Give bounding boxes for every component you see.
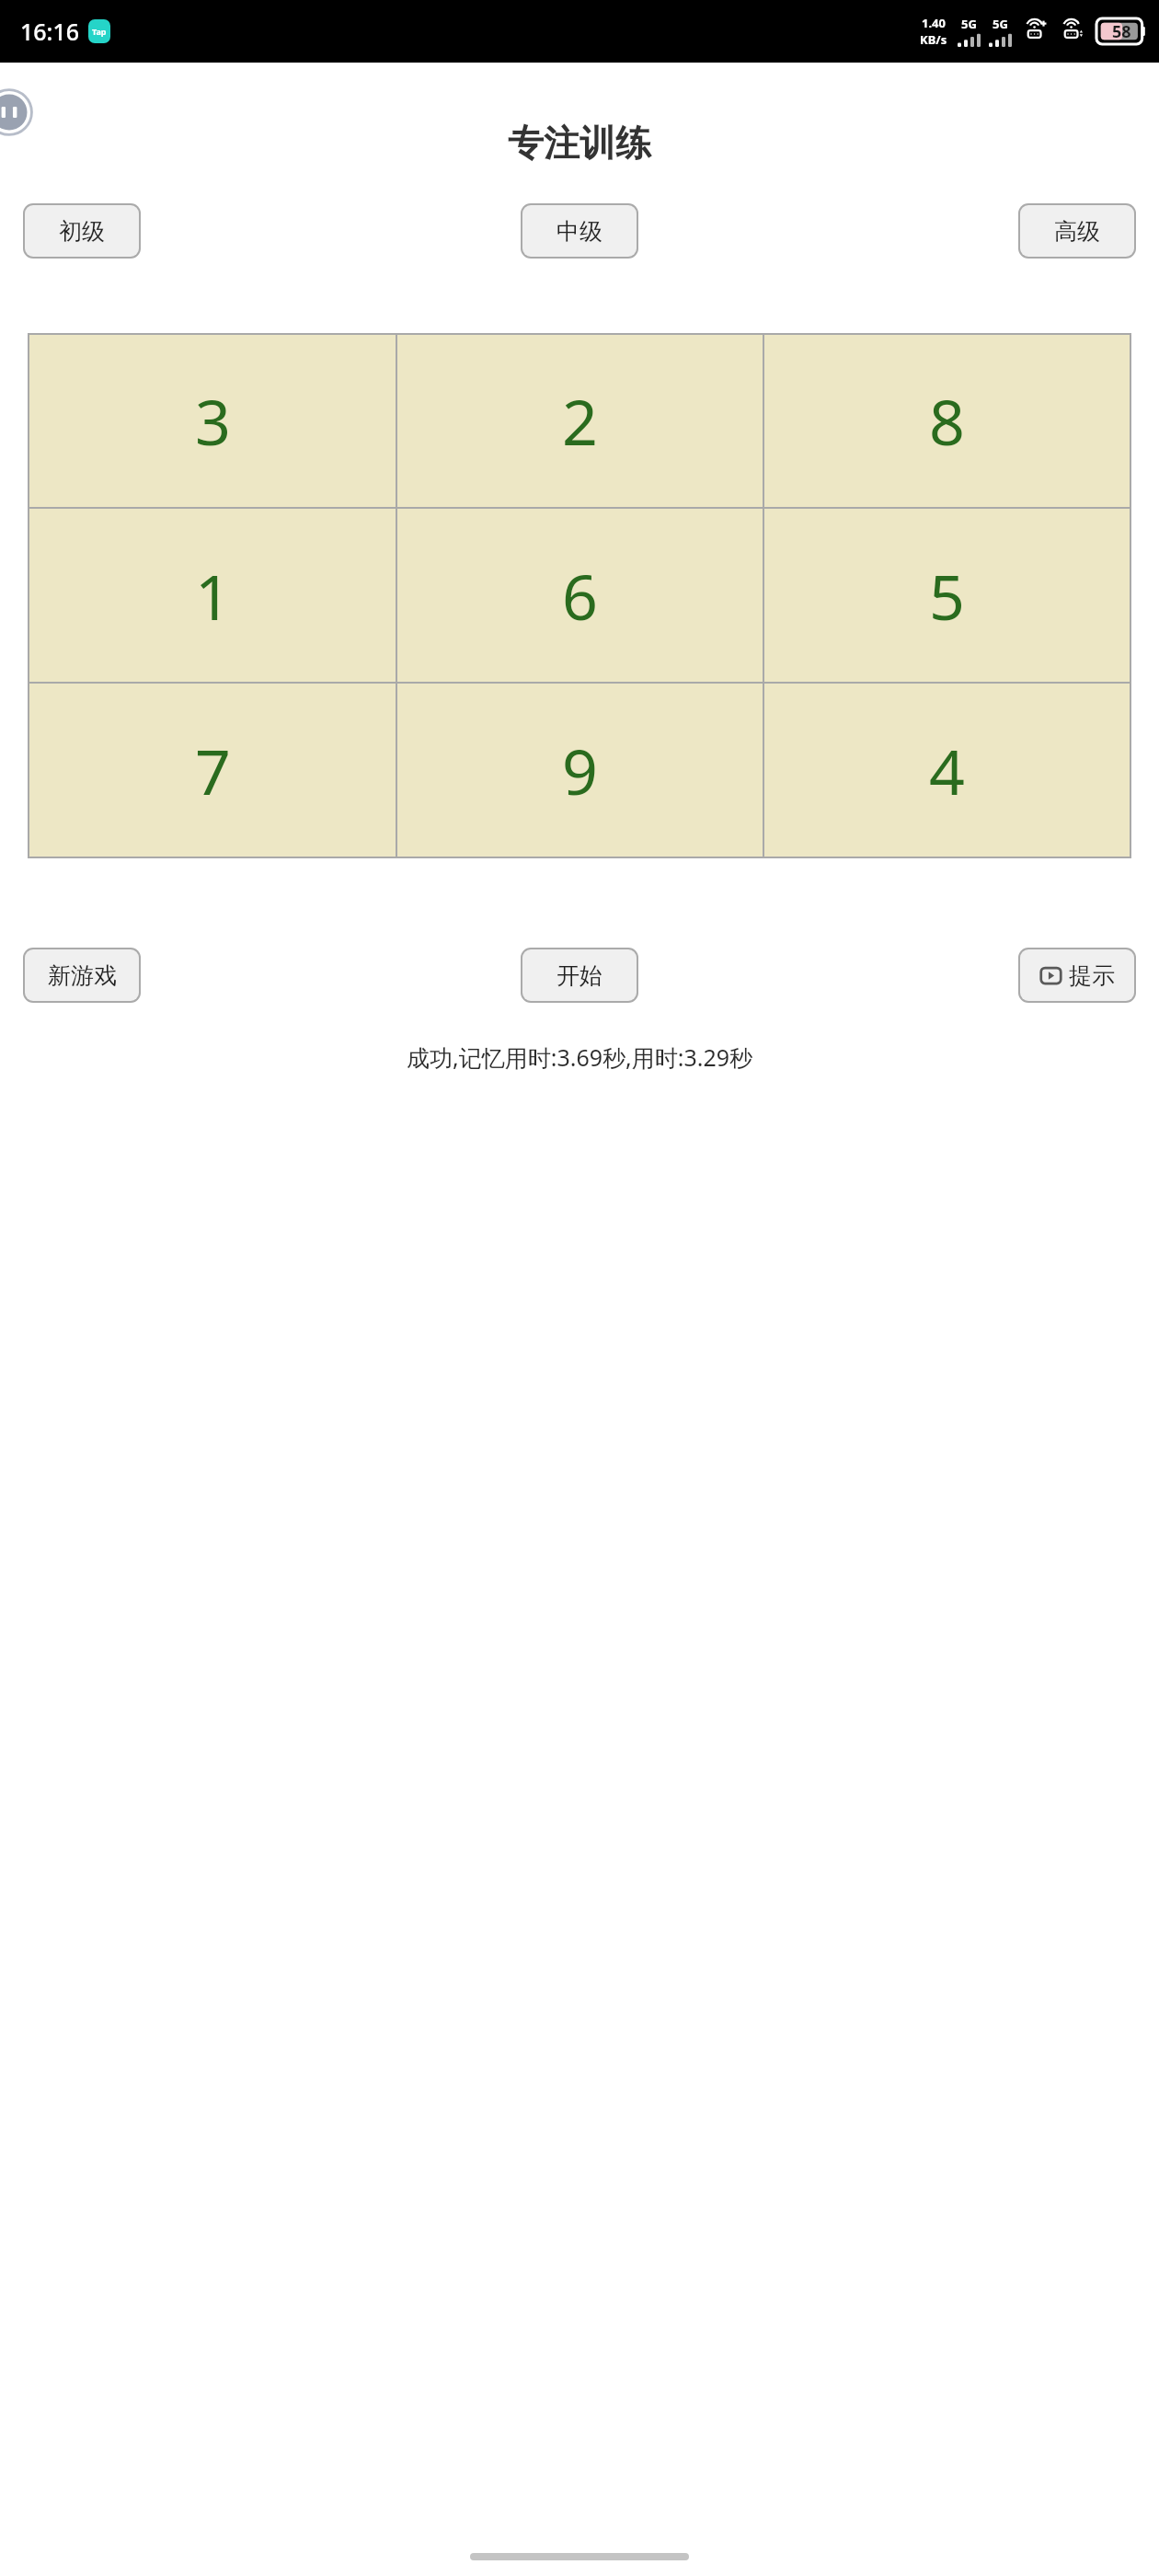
staticText: 成功,记忆用时:3.69秒,用时:3.29秒 <box>0 1041 1159 1073</box>
staticText: 7 <box>195 728 231 813</box>
staticText: 6 <box>562 553 598 638</box>
button[interactable]: 5 <box>764 509 1130 682</box>
button[interactable]: Pause <box>0 88 33 136</box>
button[interactable]: 3 <box>29 335 396 507</box>
staticText: 高级 <box>1054 217 1100 246</box>
staticText: 5G <box>961 16 977 32</box>
button[interactable]: 6 <box>397 509 763 682</box>
button[interactable]: 开始 <box>522 949 637 1001</box>
staticText: 提示 <box>1069 961 1115 990</box>
staticText: 4 <box>929 728 965 813</box>
button[interactable]: 8 <box>764 335 1130 507</box>
staticText: 8 <box>929 378 965 464</box>
button[interactable]: 7 <box>29 684 396 857</box>
staticText: 新游戏 <box>48 961 117 990</box>
button[interactable]: 提示 <box>1020 949 1134 1001</box>
button[interactable]: 9 <box>397 684 763 857</box>
staticText: 1.40 <box>922 15 946 31</box>
staticText: 中级 <box>557 217 602 246</box>
staticText: 58 <box>1112 20 1131 43</box>
staticText: 5G <box>993 16 1008 32</box>
staticText: 专注训练 <box>0 121 1159 166</box>
button[interactable]: 1 <box>29 509 396 682</box>
staticText: Tap <box>92 26 107 37</box>
staticText: 9 <box>562 728 598 813</box>
button[interactable]: 中级 <box>522 205 637 257</box>
staticText: 2 <box>562 378 598 464</box>
button[interactable]: 新游戏 <box>25 949 139 1001</box>
button[interactable]: 2 <box>397 335 763 507</box>
staticText: 初级 <box>59 217 105 246</box>
staticText: 16:16 <box>20 16 80 47</box>
staticText: 开始 <box>557 961 602 990</box>
button[interactable]: 初级 <box>25 205 139 257</box>
button[interactable]: 4 <box>764 684 1130 857</box>
staticText: 3 <box>195 378 231 464</box>
staticText: 5 <box>929 553 965 638</box>
staticText: KB/s <box>920 31 947 48</box>
button[interactable]: 高级 <box>1020 205 1134 257</box>
staticText: 1 <box>195 553 231 638</box>
